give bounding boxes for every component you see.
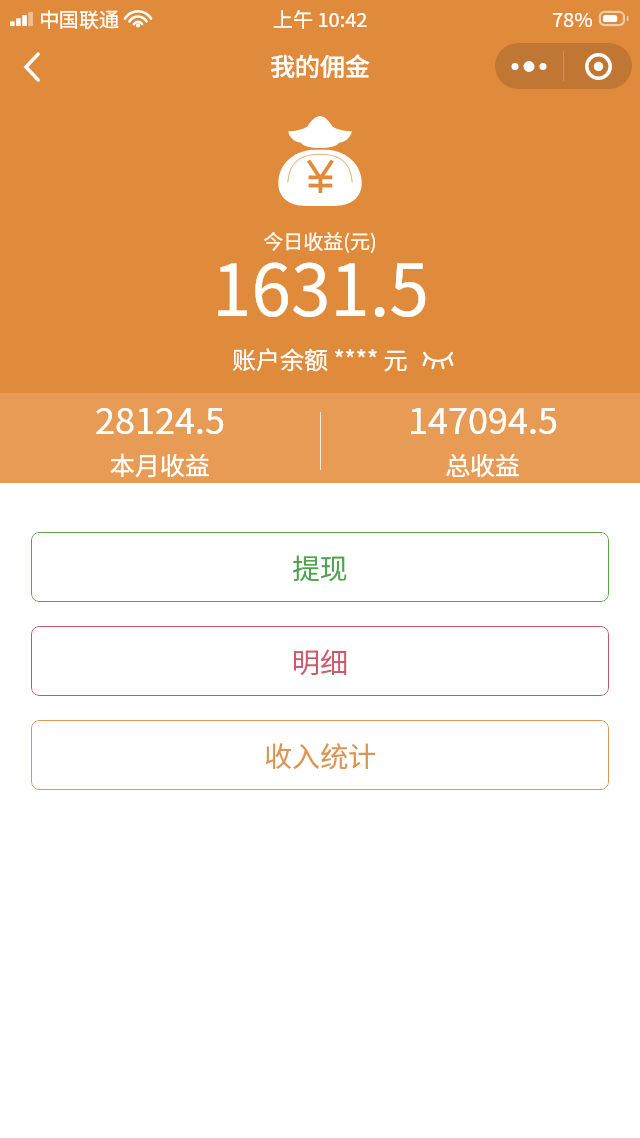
staticText: 中国联通 — [39, 4, 119, 33]
staticText: 78% — [552, 4, 593, 33]
button[interactable]: More options — [495, 43, 563, 89]
button[interactable]: 提现 — [31, 532, 609, 602]
staticText: 本月收益 — [110, 446, 211, 482]
staticText: 今日收益(元) — [263, 226, 377, 255]
button[interactable]: Toggle balance visibility — [422, 351, 454, 368]
staticText: 上午 10:42 — [273, 4, 368, 33]
staticText: 1631.5 — [212, 234, 429, 337]
button[interactable]: Back — [10, 45, 54, 89]
staticText: 收入统计 — [264, 735, 377, 776]
staticText: 总收益 — [445, 446, 521, 482]
staticText: 账户余额 **** 元 — [232, 341, 408, 376]
button[interactable]: Close — [564, 43, 632, 89]
button[interactable]: 收入统计 — [31, 720, 609, 790]
staticText: 28124.5 — [95, 392, 225, 444]
staticText: 提现 — [292, 547, 349, 588]
staticText: 明细 — [292, 641, 349, 682]
staticText: 我的佣金 — [270, 47, 371, 83]
button[interactable]: 明细 — [31, 626, 609, 696]
staticText: 147094.5 — [408, 392, 558, 444]
